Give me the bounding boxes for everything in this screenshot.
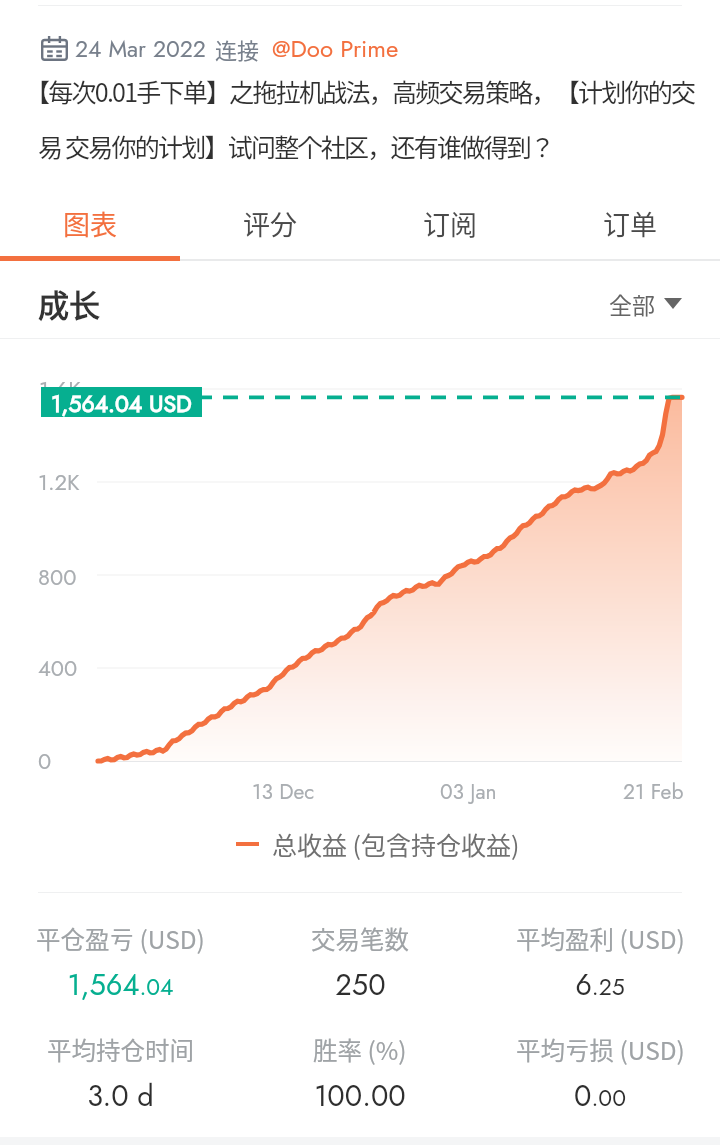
staticText: 1.2K bbox=[38, 466, 80, 492]
staticText: 平均持仓时间 bbox=[47, 1032, 194, 1067]
button[interactable]: 订阅 bbox=[360, 190, 540, 256]
button[interactable]: Calendar bbox=[41, 31, 399, 66]
staticText: 成长 bbox=[38, 281, 100, 326]
staticText: 全部 bbox=[609, 287, 655, 320]
staticText: 21 Feb bbox=[623, 777, 684, 807]
staticText: 【每次0.01手下单】之拖拉机战法，高频交易策略，【计划你的交 bbox=[25, 73, 695, 109]
staticText: 订阅 bbox=[423, 204, 477, 243]
staticText: 0 bbox=[38, 745, 52, 771]
staticText: 100.00 bbox=[314, 1075, 406, 1117]
staticText: 1,564.04 bbox=[67, 964, 174, 1006]
staticText: 250 bbox=[335, 964, 386, 1006]
staticText: 6.25 bbox=[575, 964, 625, 1006]
staticText: 交易笔数 bbox=[311, 921, 409, 956]
staticText: 连接 bbox=[215, 33, 260, 65]
staticText: 图表 bbox=[63, 204, 117, 243]
staticText: 1.6K bbox=[39, 373, 81, 399]
staticText: 评分 bbox=[243, 204, 297, 243]
staticText: 平均亏损 (USD) bbox=[516, 1032, 685, 1067]
staticText: 0.00 bbox=[574, 1075, 626, 1117]
staticText: @Doo Prime bbox=[272, 31, 399, 66]
button[interactable]: 全部 bbox=[609, 287, 682, 320]
staticText: 平仓盈亏 (USD) bbox=[36, 921, 205, 956]
staticText: 03 Jan bbox=[440, 777, 497, 807]
other: Calendar bbox=[41, 36, 68, 61]
staticText: 订单 bbox=[603, 204, 657, 243]
staticText: 13 Dec bbox=[252, 777, 315, 807]
staticText: 3.0 d bbox=[87, 1075, 154, 1117]
button[interactable]: 图表 bbox=[0, 190, 180, 256]
staticText: 800 bbox=[38, 561, 77, 587]
staticText: 总收益 (包含持仓收益) bbox=[272, 826, 520, 862]
staticText: 平均盈利 (USD) bbox=[516, 921, 685, 956]
staticText: 1,564.04 USD bbox=[51, 387, 192, 417]
staticText: 400 bbox=[38, 652, 78, 678]
staticText: 24 Mar 2022 bbox=[75, 32, 206, 65]
button[interactable]: 订单 bbox=[540, 190, 720, 256]
staticText: 易 交易你的计划】试问整个社区，还有谁做得到？ bbox=[38, 128, 554, 164]
staticText: 胜率 (%) bbox=[313, 1032, 407, 1067]
button[interactable]: 评分 bbox=[180, 190, 360, 256]
